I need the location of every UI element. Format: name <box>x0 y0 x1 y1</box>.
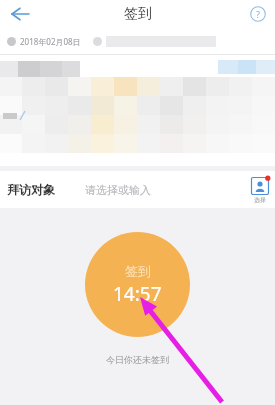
staticText: 签到 <box>125 263 151 279</box>
staticText: 14:57 <box>113 281 162 307</box>
staticText: 签到 <box>124 5 152 23</box>
button[interactable]: Help <box>245 1 271 27</box>
staticText: 选择 <box>254 196 266 204</box>
button[interactable]: 签到 <box>85 232 190 337</box>
staticText: 2018年02月08日 <box>20 36 81 47</box>
staticText: 拜访对象 <box>7 182 55 197</box>
staticText: 请选择或输入 <box>85 183 151 197</box>
staticText: 今日你还未签到 <box>106 354 169 365</box>
button[interactable]: 选择 <box>250 176 270 204</box>
staticText: ? <box>256 8 260 20</box>
button[interactable]: Back <box>4 0 36 28</box>
